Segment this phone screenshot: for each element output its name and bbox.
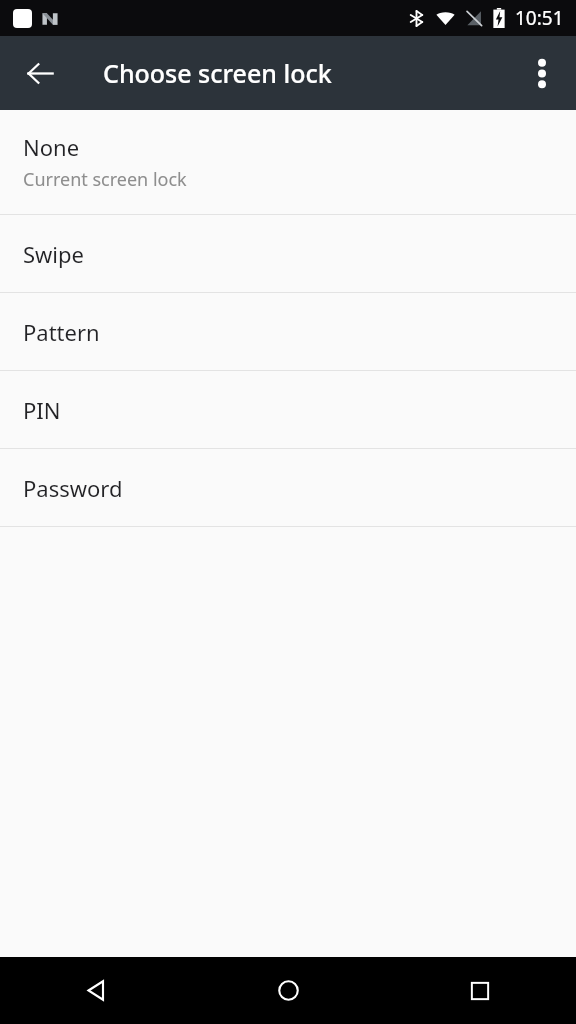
button[interactable]: Home	[192, 957, 384, 1024]
button[interactable]: Navigate up	[12, 45, 68, 101]
button[interactable]: Back	[0, 957, 192, 1024]
button[interactable]: More options	[514, 45, 570, 101]
button[interactable]: PIN	[0, 371, 576, 448]
button[interactable]: Recent apps	[384, 957, 576, 1024]
staticText: Password	[23, 473, 123, 503]
button[interactable]: Pattern	[0, 293, 576, 370]
button[interactable]: None	[0, 110, 576, 214]
staticText: Swipe	[23, 239, 84, 269]
staticText: 10:51	[515, 5, 564, 31]
staticText: None	[23, 132, 80, 162]
button[interactable]: Password	[0, 449, 576, 526]
staticText: PIN	[23, 395, 61, 425]
staticText: Current screen lock	[23, 167, 187, 192]
button[interactable]: Swipe	[0, 215, 576, 292]
staticText: Pattern	[23, 317, 100, 347]
staticText: Choose screen lock	[103, 56, 332, 90]
